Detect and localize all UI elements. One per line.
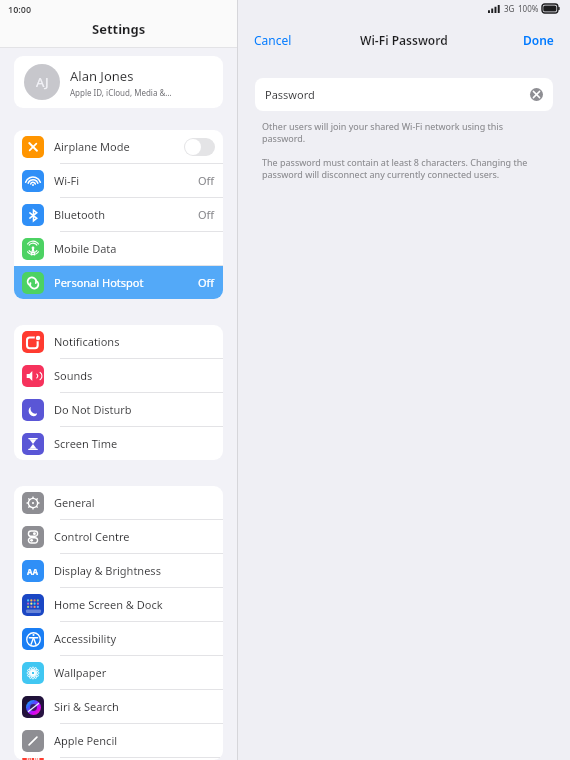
button[interactable]: AA [14,554,223,588]
staticText: Wallpaper [54,665,215,680]
staticText: Airplane Mode [54,139,184,154]
staticText: Bluetooth [54,207,198,222]
staticText: General [54,495,215,510]
staticText: 100% [518,3,539,14]
staticText: 10:00 [8,3,32,15]
staticText: Settings [92,20,146,38]
button[interactable]: Wallpaper [14,656,223,690]
staticText: Apple Pencil [54,733,215,748]
button[interactable]: Notifications [14,325,223,359]
button[interactable]: Home Screen & Dock [14,588,223,622]
staticText: AJ [36,73,49,91]
button[interactable]: Control Centre [14,520,223,554]
staticText: Screen Time [54,436,215,451]
staticText: AA [27,566,39,577]
staticText: Control Centre [54,529,215,544]
button[interactable]: Siri & Search [14,690,223,724]
staticText: Other users will join your shared Wi-Fi … [262,120,546,145]
button[interactable]: Do Not Disturb [14,393,223,427]
staticText: Siri & Search [54,699,215,714]
button[interactable]: Screen Time [14,427,223,460]
button[interactable]: Clear text [530,88,543,101]
button[interactable]: Cancel [254,32,292,48]
button[interactable]: AJ [14,56,223,108]
staticText: Off [198,173,215,188]
staticText: Do Not Disturb [54,402,215,417]
button[interactable]: Wi-Fi [14,164,223,198]
button[interactable]: Password [255,78,553,111]
staticText: The password must contain at least 8 cha… [262,156,546,181]
staticText: Password [265,87,530,102]
button[interactable]: Mobile Data [14,232,223,266]
button[interactable]: Accessibility [14,622,223,656]
staticText: Home Screen & Dock [54,597,215,612]
button[interactable]: Apple Pencil [14,724,223,758]
staticText: Accessibility [54,631,215,646]
button[interactable]: Bluetooth [14,198,223,232]
staticText: Personal Hotspot [54,275,198,290]
button[interactable]: General [14,486,223,520]
button[interactable]: Touch ID & Passcode [14,758,223,760]
staticText: Wi-Fi Password [360,32,448,48]
staticText: Wi-Fi [54,173,198,188]
button[interactable]: Personal Hotspot [14,266,223,299]
staticText: Display & Brightness [54,563,215,578]
staticText: Off [198,275,215,290]
staticText: Alan Jones [70,67,134,85]
button[interactable]: Airplane Mode [14,130,223,164]
staticText: Mobile Data [54,241,215,256]
staticText: Off [198,207,215,222]
staticText: Sounds [54,368,215,383]
button[interactable]: Sounds [14,359,223,393]
button[interactable]: Done [523,32,554,48]
staticText: 3G [504,3,515,14]
staticText: Notifications [54,334,215,349]
staticText: Apple ID, iCloud, Media &… [70,87,172,98]
